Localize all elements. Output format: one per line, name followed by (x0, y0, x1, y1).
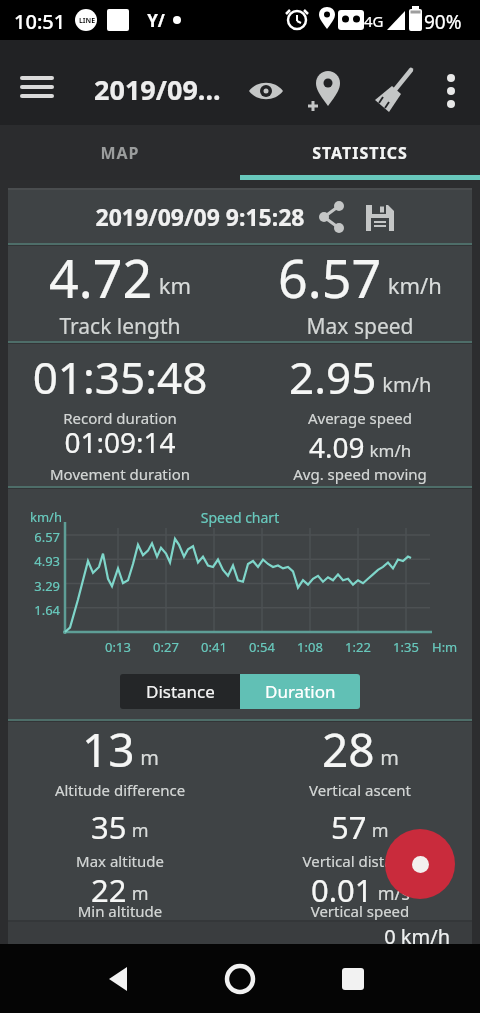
staticText: 22 (91, 869, 127, 911)
staticText: Vertical distance (240, 851, 480, 871)
staticText: m (127, 881, 149, 906)
staticText: Vertical speed (240, 901, 480, 921)
button[interactable] (0, 125, 240, 180)
staticText: 4.93 (10, 552, 60, 570)
staticText: 4G (364, 11, 388, 31)
staticText: 01:35:48 (0, 347, 240, 407)
staticText: 0:54 (242, 638, 282, 656)
staticText: m (135, 744, 159, 771)
button[interactable] (360, 197, 400, 237)
staticText: m (127, 818, 149, 843)
button[interactable] (242, 68, 290, 114)
button[interactable] (10, 70, 62, 116)
staticText: Vertical ascent (240, 780, 480, 800)
staticText: Track length (0, 312, 240, 341)
staticText: Distance (146, 680, 215, 703)
staticText: 3.29 (10, 577, 60, 595)
staticText: 1:08 (290, 638, 330, 656)
staticText: km/h (377, 371, 432, 398)
staticText: Duration (265, 680, 336, 703)
staticText: 90% (424, 9, 480, 35)
staticText: 28 (322, 718, 375, 778)
staticText: 57 (331, 806, 367, 848)
staticText: Min altitude (0, 901, 240, 921)
button[interactable] (312, 198, 350, 236)
staticText: STATISTICS (240, 142, 480, 164)
staticText: 10:51 (14, 8, 94, 35)
staticText: MAP (0, 142, 240, 164)
button[interactable] (368, 66, 420, 116)
button[interactable]: Distance (120, 674, 240, 709)
staticText: 2019/09/09 9:15:28 (60, 201, 340, 232)
staticText: Speed chart (150, 508, 330, 527)
button[interactable] (240, 125, 480, 180)
staticText: m (375, 744, 399, 771)
staticText: km (153, 270, 192, 300)
staticText: H:m (432, 638, 476, 656)
staticText: Avg. speed moving (240, 464, 480, 484)
staticText: km/h (382, 270, 442, 300)
staticText: 2.95 (289, 347, 377, 405)
staticText: Altitude difference (0, 780, 240, 800)
button[interactable]: Duration (240, 674, 360, 709)
staticText: 35 (91, 806, 127, 848)
staticText: 0:13 (98, 638, 138, 656)
staticText: Max altitude (0, 851, 240, 871)
staticText: 0 km/h (316, 923, 450, 950)
staticText: m/s (373, 881, 410, 906)
staticText: LINE (70, 16, 104, 26)
staticText: 1:22 (338, 638, 378, 656)
staticText: m (367, 818, 389, 843)
button[interactable] (428, 68, 472, 116)
staticText: 0:41 (194, 638, 234, 656)
staticText: 4.09 (309, 428, 365, 466)
button[interactable] (385, 829, 455, 899)
staticText: 13 (82, 718, 135, 778)
staticText: Max speed (240, 312, 480, 341)
staticText: 0.01 (311, 869, 373, 911)
button[interactable] (302, 66, 350, 116)
button[interactable] (216, 956, 264, 1002)
staticText: Y/ (138, 9, 174, 32)
staticText: 2019/09... (94, 71, 274, 108)
staticText: Record duration (0, 408, 240, 428)
staticText: 0:27 (146, 638, 186, 656)
button[interactable] (330, 956, 378, 1002)
staticText: 4.72 (49, 242, 153, 308)
staticText: 6.57 (278, 242, 382, 308)
button[interactable] (96, 956, 144, 1002)
staticText: Average speed (240, 408, 480, 428)
staticText: Movement duration (0, 464, 240, 484)
staticText: 1:35 (386, 638, 426, 656)
staticText: km/h (365, 439, 412, 462)
staticText: 1.64 (10, 601, 60, 619)
staticText: 6.57 (10, 528, 60, 546)
staticText: km/h (30, 508, 90, 526)
staticText: 01:09:14 (0, 423, 240, 461)
